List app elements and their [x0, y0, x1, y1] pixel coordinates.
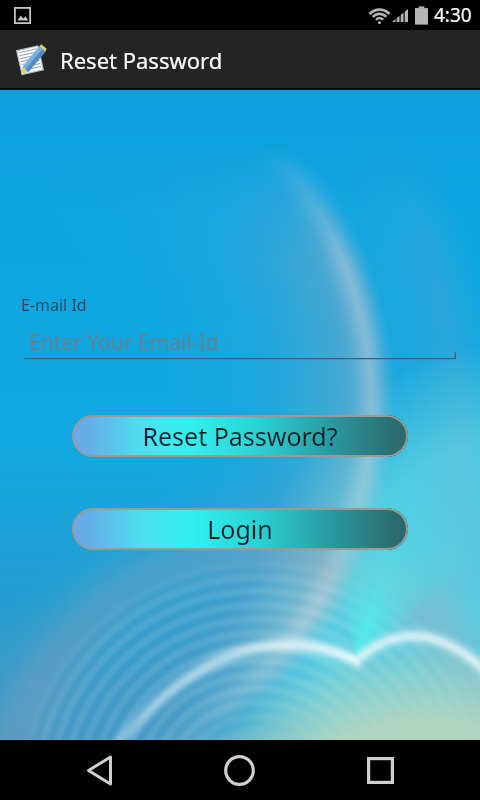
button[interactable]: Login [72, 508, 408, 550]
button[interactable]: Back [59, 740, 139, 800]
staticText: 4:30 [434, 2, 472, 28]
button[interactable]: Recent apps [340, 740, 420, 800]
staticText: E-mail Id [21, 294, 87, 316]
staticText: Login [207, 512, 273, 546]
staticText: Enter Your Email-Id [29, 328, 219, 357]
staticText: Reset Password [60, 45, 223, 75]
staticText: Reset Password? [142, 419, 338, 453]
button[interactable]: Home [199, 740, 279, 800]
button[interactable]: Reset Password? [72, 415, 408, 457]
